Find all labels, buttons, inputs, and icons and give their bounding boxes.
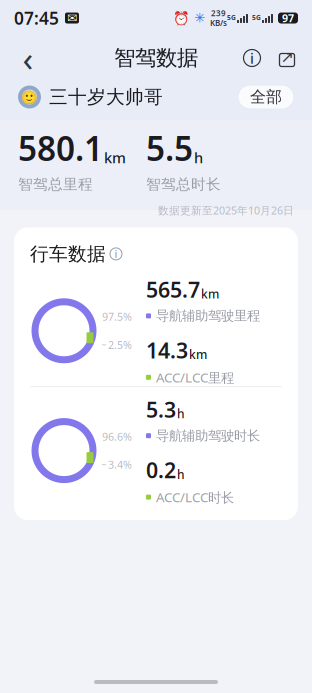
staticText: 全部	[250, 87, 282, 107]
staticText: 三十岁大帅哥	[49, 85, 163, 108]
staticText: ✳	[194, 10, 205, 25]
button[interactable]: 🙂	[18, 85, 163, 108]
button[interactable]: Info	[234, 36, 270, 80]
staticText: 97	[282, 11, 294, 25]
button[interactable]: 全部	[238, 85, 294, 109]
staticText: 智驾总里程	[18, 175, 93, 193]
staticText: 5.5	[146, 126, 193, 170]
staticText: ✉	[67, 11, 77, 25]
staticText: 2.5%	[108, 338, 132, 352]
staticText: h	[177, 406, 185, 421]
staticText: 5.3	[146, 395, 176, 423]
staticText: h	[177, 466, 185, 482]
staticText: 14.3	[146, 336, 188, 364]
staticText: km	[189, 346, 207, 362]
staticText: 智驾数据	[114, 45, 198, 71]
staticText: 97.5%	[102, 310, 132, 324]
staticText: KB/s	[210, 17, 227, 28]
staticText: 580.1	[18, 126, 103, 170]
button[interactable]: About driving data	[110, 248, 122, 260]
staticText: ‹	[22, 35, 33, 81]
staticText: 5G	[252, 13, 261, 22]
staticText: km	[201, 286, 219, 302]
staticText: 导航辅助驾驶时长	[156, 427, 260, 444]
staticText: 行车数据	[30, 242, 106, 265]
staticText: 数据更新至2025年10月26日	[158, 203, 294, 217]
staticText: h	[194, 148, 203, 167]
staticText: 导航辅助驾驶里程	[156, 308, 260, 324]
staticText: 96.6%	[102, 429, 132, 444]
staticText: i	[114, 247, 117, 261]
staticText: 🙂	[21, 89, 38, 105]
staticText: i	[250, 48, 254, 68]
staticText: ↗	[280, 48, 293, 66]
staticText: 智驾总时长	[146, 175, 221, 193]
staticText: ACC/LCC时长	[156, 488, 234, 506]
staticText: 5G	[227, 13, 236, 22]
staticText: ACC/LCC里程	[156, 368, 234, 386]
staticText: 3.4%	[108, 458, 132, 472]
staticText: km	[104, 148, 126, 167]
staticText: 0.2	[146, 456, 176, 484]
staticText: 565.7	[146, 275, 200, 304]
staticText: 07:45	[14, 6, 59, 29]
button[interactable]: Back	[8, 36, 48, 80]
button[interactable]: Share	[270, 36, 304, 80]
staticText: ⏰	[173, 10, 190, 26]
staticText: 239	[211, 8, 226, 18]
